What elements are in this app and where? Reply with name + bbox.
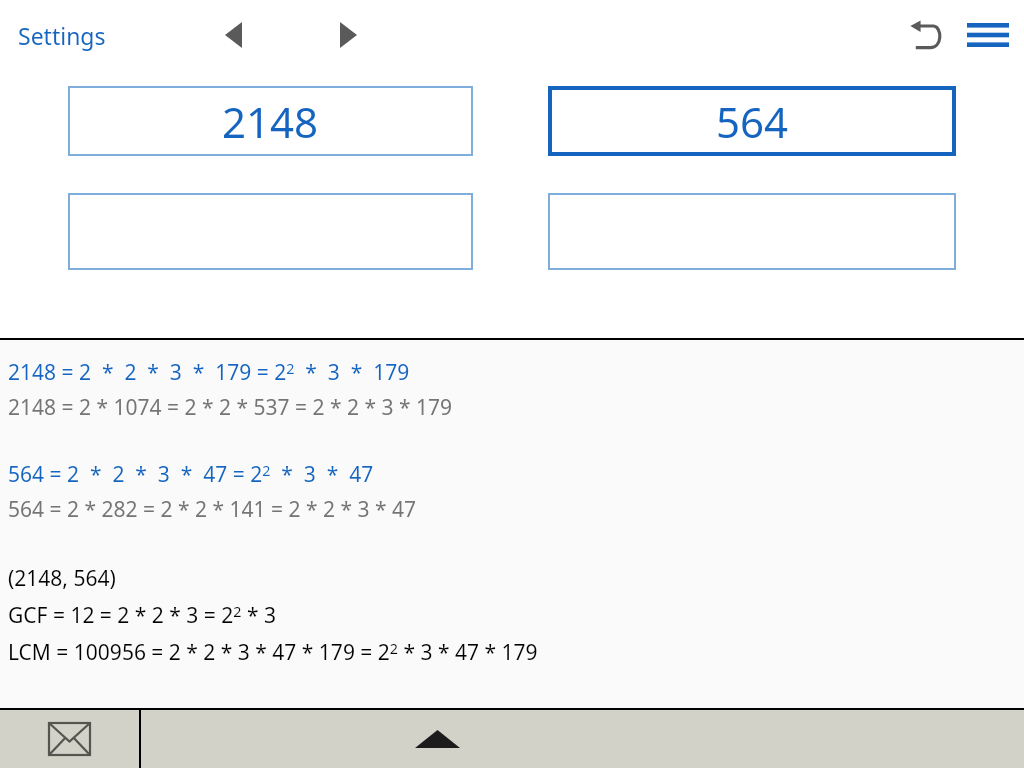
staticText: 564 = 2 * 2 * 3 * 47 = 22 * 3 * 47: [8, 460, 374, 489]
staticText: 564 = 2 * 282 = 2 * 2 * 141 = 2 * 2 * 3 …: [8, 495, 416, 524]
staticText: 564: [716, 93, 789, 150]
staticText: 2148 = 2 * 2 * 3 * 179 = 22 * 3 * 179: [8, 358, 410, 387]
button[interactable]: Settings: [8, 14, 116, 57]
button[interactable]: Mail: [0, 710, 139, 768]
button[interactable]: 2148: [68, 86, 473, 156]
button[interactable]: [68, 193, 473, 270]
button[interactable]: Menu: [960, 7, 1016, 63]
button[interactable]: Previous: [210, 12, 256, 58]
staticText: GCF = 12 = 2 * 2 * 3 = 22 * 3: [8, 601, 276, 630]
staticText: Settings: [18, 20, 106, 51]
staticText: LCM = 100956 = 2 * 2 * 3 * 47 * 179 = 22…: [8, 638, 538, 667]
button[interactable]: Next: [325, 12, 371, 58]
staticText: (2148, 564): [8, 564, 116, 593]
button[interactable]: Expand: [141, 710, 1024, 768]
button[interactable]: 564: [548, 86, 956, 156]
button[interactable]: Undo: [900, 9, 952, 61]
staticText: 2148 = 2 * 1074 = 2 * 2 * 537 = 2 * 2 * …: [8, 393, 452, 422]
staticText: 2148: [222, 93, 319, 150]
button[interactable]: [548, 193, 956, 270]
